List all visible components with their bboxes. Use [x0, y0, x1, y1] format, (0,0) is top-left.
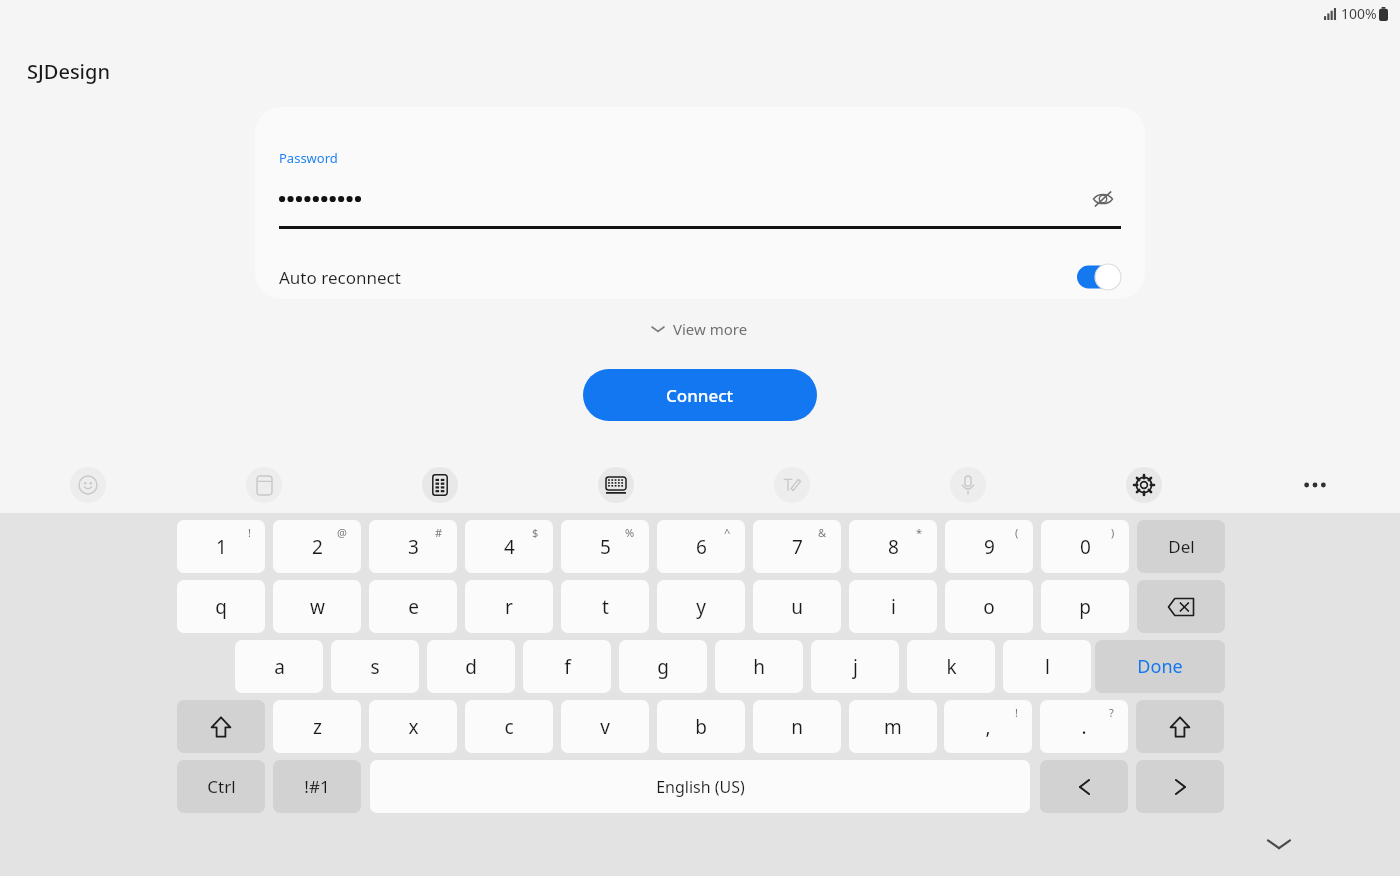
staticText: n	[791, 714, 803, 740]
button[interactable]: More options	[1297, 467, 1333, 503]
button[interactable]: w	[273, 580, 361, 633]
button[interactable]: Keypad	[422, 467, 458, 503]
button[interactable]: l	[1003, 640, 1091, 693]
staticText: .	[1081, 714, 1087, 740]
staticText: ?	[1109, 705, 1114, 720]
button[interactable]: n	[753, 700, 841, 753]
button[interactable]: Move right	[1136, 760, 1224, 813]
staticText: SJDesign	[27, 58, 110, 85]
staticText: g	[657, 654, 669, 680]
staticText: s	[370, 654, 380, 680]
button[interactable]: Settings	[1126, 467, 1162, 503]
button[interactable]: 6	[657, 520, 745, 573]
button[interactable]: c	[465, 700, 553, 753]
button[interactable]: g	[619, 640, 707, 693]
button[interactable]: q	[177, 580, 265, 633]
button[interactable]: h	[715, 640, 803, 693]
button[interactable]: a	[235, 640, 323, 693]
staticText: (	[1015, 525, 1019, 540]
button[interactable]: e	[369, 580, 457, 633]
button[interactable]: 1	[177, 520, 265, 573]
staticText: l	[1045, 654, 1050, 680]
staticText: a	[274, 654, 285, 680]
staticText: h	[753, 654, 765, 680]
button[interactable]: 9	[945, 520, 1033, 573]
button[interactable]: View more	[642, 315, 758, 343]
button[interactable]: v	[561, 700, 649, 753]
button[interactable]: Show password	[1085, 181, 1121, 217]
button[interactable]: Emoji	[70, 467, 106, 503]
button[interactable]: 8	[849, 520, 937, 573]
staticText: u	[791, 594, 803, 620]
button[interactable]: Done	[1095, 640, 1225, 693]
staticText: Done	[1137, 654, 1183, 679]
button[interactable]: x	[369, 700, 457, 753]
button[interactable]: u	[753, 580, 841, 633]
button[interactable]: Shift	[177, 700, 265, 753]
staticText: Auto reconnect	[279, 266, 1077, 289]
button[interactable]: Del	[1137, 520, 1225, 573]
button[interactable]: s	[331, 640, 419, 693]
button[interactable]: Keyboard modes	[598, 467, 634, 503]
staticText: )	[1111, 525, 1115, 540]
button[interactable]: Hide keyboard	[1248, 821, 1310, 867]
staticText: b	[695, 714, 707, 740]
staticText: x	[408, 714, 419, 740]
button[interactable]: b	[657, 700, 745, 753]
staticText: 5	[600, 534, 611, 560]
button[interactable]: Clipboard	[246, 467, 282, 503]
staticText: *	[916, 525, 923, 540]
button[interactable]: p	[1041, 580, 1129, 633]
button[interactable]: r	[465, 580, 553, 633]
button[interactable]: 3	[369, 520, 457, 573]
button[interactable]: .	[1040, 700, 1128, 753]
staticText: Del	[1168, 535, 1195, 558]
button[interactable]: 5	[561, 520, 649, 573]
button[interactable]: t	[561, 580, 649, 633]
button[interactable]: Handwriting	[774, 467, 810, 503]
staticText: !	[248, 525, 251, 540]
button[interactable]: k	[907, 640, 995, 693]
button[interactable]: 7	[753, 520, 841, 573]
button[interactable]: Voice input	[950, 467, 986, 503]
staticText: 3	[408, 534, 419, 560]
button[interactable]: Auto reconnect	[279, 257, 1121, 297]
staticText: j	[853, 654, 858, 680]
button[interactable]: 0	[1041, 520, 1129, 573]
staticText: 4	[504, 534, 515, 560]
staticText: ,	[985, 714, 991, 740]
button[interactable]: Shift	[1136, 700, 1224, 753]
button[interactable]: Move left	[1040, 760, 1128, 813]
staticText: q	[215, 594, 227, 620]
button[interactable]: !#1	[273, 760, 361, 813]
button[interactable]: 4	[465, 520, 553, 573]
staticText: Connect	[666, 384, 734, 407]
button[interactable]: ,	[944, 700, 1032, 753]
button[interactable]: z	[273, 700, 361, 753]
button[interactable]: 2	[273, 520, 361, 573]
button[interactable]: f	[523, 640, 611, 693]
button[interactable]: Ctrl	[177, 760, 265, 813]
staticText: View more	[673, 319, 748, 339]
button[interactable]: m	[849, 700, 937, 753]
staticText: f	[564, 654, 571, 680]
button[interactable]: y	[657, 580, 745, 633]
button[interactable]: Backspace	[1137, 580, 1225, 633]
button[interactable]: Connect	[583, 369, 817, 421]
staticText: w	[310, 594, 325, 620]
button[interactable]: English (US)	[370, 760, 1030, 813]
staticText: 100%	[1341, 4, 1377, 23]
staticText: $	[532, 525, 539, 540]
button[interactable]: o	[945, 580, 1033, 633]
staticText: r	[505, 594, 513, 620]
button[interactable]: i	[849, 580, 937, 633]
staticText: ^	[724, 525, 731, 540]
staticText: %	[625, 525, 635, 540]
staticText: !#1	[304, 775, 330, 798]
button[interactable]: d	[427, 640, 515, 693]
staticText: d	[465, 654, 477, 680]
staticText: 1	[216, 534, 227, 560]
button[interactable]: j	[811, 640, 899, 693]
staticText: @	[337, 525, 347, 540]
staticText: &	[818, 525, 827, 540]
